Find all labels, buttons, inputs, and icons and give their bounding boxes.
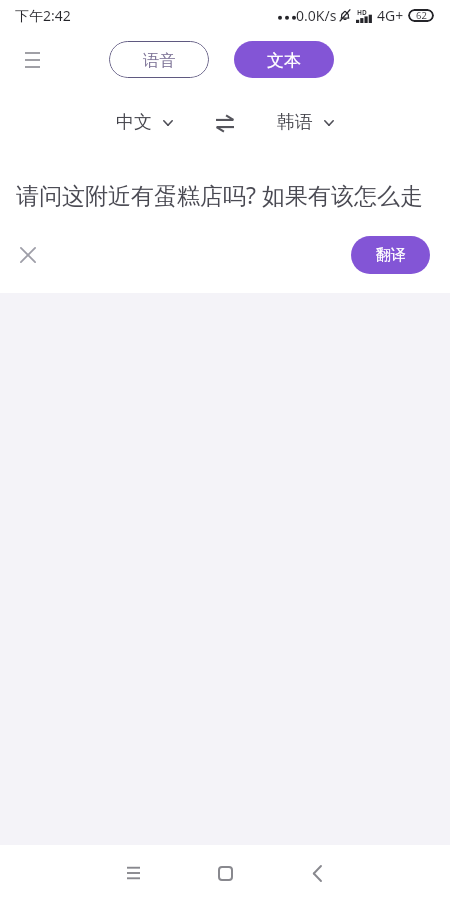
- button[interactable]: Recent apps: [110, 850, 156, 896]
- button[interactable]: Menu: [12, 39, 53, 80]
- staticText: 62: [416, 9, 427, 22]
- button[interactable]: Clear: [8, 235, 48, 275]
- staticText: HD: [357, 8, 367, 17]
- button[interactable]: 翻译: [351, 236, 430, 274]
- staticText: 下午2:42: [15, 6, 71, 25]
- staticText: 文本: [267, 50, 301, 71]
- staticText: 语音: [143, 50, 176, 71]
- staticText: 韩语: [277, 111, 313, 134]
- button[interactable]: 语音: [109, 41, 209, 78]
- staticText: 请问这附近有蛋糕店吗? 如果有该怎么走: [16, 179, 423, 210]
- button[interactable]: 韩语: [275, 111, 336, 134]
- staticText: 0.0K/s: [296, 6, 337, 25]
- button[interactable]: Back: [294, 850, 340, 896]
- button[interactable]: 文本: [234, 41, 334, 78]
- button[interactable]: Home: [202, 850, 248, 896]
- staticText: 翻译: [376, 246, 406, 265]
- staticText: 中文: [116, 111, 152, 134]
- button[interactable]: Swap languages: [212, 110, 238, 136]
- button[interactable]: 中文: [114, 111, 175, 134]
- staticText: 4G+: [377, 6, 404, 25]
